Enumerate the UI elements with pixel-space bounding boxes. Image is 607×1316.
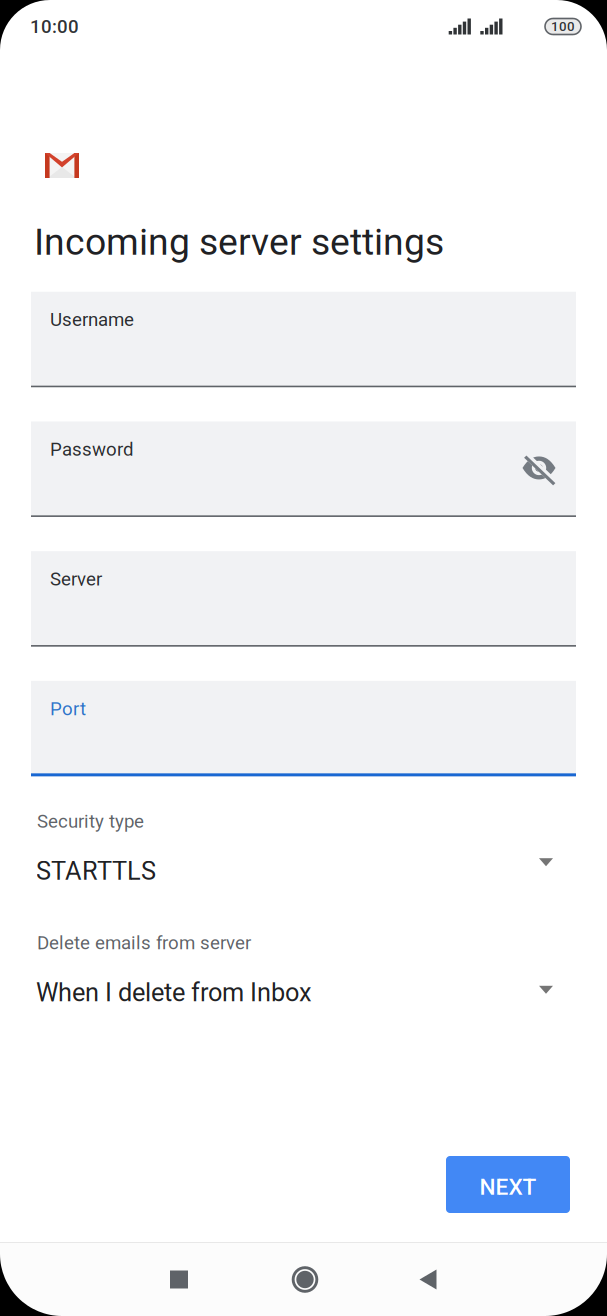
button[interactable]: NEXT [446,1156,570,1213]
button[interactable]: Port [31,681,576,776]
staticText: Password [50,438,134,460]
staticText: When I delete from Inbox [36,978,312,1007]
staticText: Port [50,698,86,720]
staticText: Incoming server settings [34,220,444,264]
button[interactable]: Recent apps [157,1257,201,1302]
staticText: Server [50,568,102,590]
staticText: Delete emails from server [37,932,251,954]
staticText: 100 [551,19,575,34]
staticText: Security type [37,810,144,832]
button[interactable]: Password [31,421,576,517]
button[interactable]: Home [283,1257,327,1302]
button[interactable]: Security type [0,810,607,886]
staticText: Username [50,309,134,331]
button[interactable]: Back [406,1257,450,1302]
staticText: NEXT [479,1174,536,1200]
button[interactable]: Delete emails from server [0,932,607,1007]
staticText: 10:00 [30,16,79,37]
button[interactable]: Server [31,551,576,647]
staticText: STARTTLS [36,856,156,886]
button[interactable]: Username [31,292,576,387]
